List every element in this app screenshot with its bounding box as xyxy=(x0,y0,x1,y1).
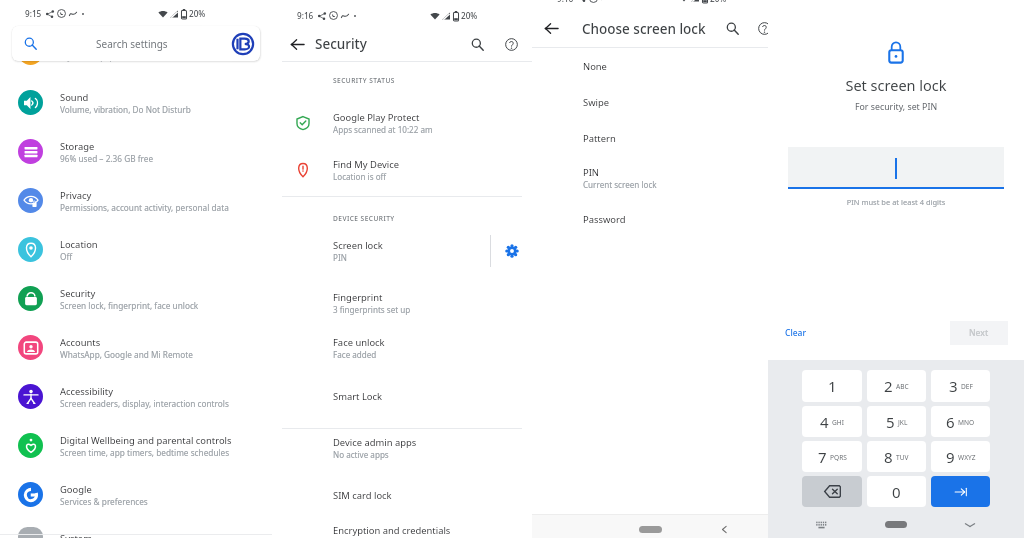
button[interactable]: Google xyxy=(0,470,272,519)
staticText: TUV xyxy=(896,453,909,462)
button[interactable]: None xyxy=(532,49,768,84)
staticText: 5 xyxy=(886,412,895,432)
staticText: Set screen lock xyxy=(768,75,1024,95)
staticText: Swipe xyxy=(583,96,610,109)
button[interactable]: Next xyxy=(950,321,1008,345)
staticText: 96% used – 2.36 GB free xyxy=(60,153,154,164)
staticText: Find My Device xyxy=(333,158,400,171)
staticText: Google Play Protect xyxy=(333,111,420,124)
button[interactable]: SIM card lock xyxy=(272,466,532,524)
staticText: Storage xyxy=(60,140,95,153)
staticText: 9:16 xyxy=(297,10,314,21)
button[interactable]: Pattern xyxy=(532,121,768,155)
button[interactable]: 4 xyxy=(802,406,862,437)
button[interactable]: 1 xyxy=(802,370,862,402)
staticText: PQRS xyxy=(830,453,847,462)
staticText: 20% xyxy=(461,10,478,21)
button[interactable]: Accessibility xyxy=(0,372,272,421)
button[interactable]: Backspace xyxy=(802,476,862,507)
staticText: PIN xyxy=(583,166,600,179)
staticText: Privacy xyxy=(60,189,92,202)
button[interactable]: Screen lock settings xyxy=(491,229,532,273)
staticText: 3 fingerprints set up xyxy=(333,304,411,315)
staticText: For security, set PIN xyxy=(768,101,1024,113)
button[interactable]: Device admin apps xyxy=(272,429,532,466)
button[interactable]: Search xyxy=(460,27,494,61)
button[interactable]: Face unlock xyxy=(272,332,532,364)
button[interactable]: Search settings xyxy=(12,26,260,61)
staticText: Accessibility xyxy=(60,385,113,398)
button[interactable]: Find My Device xyxy=(272,149,532,190)
staticText: Digital Wellbeing and parental controls xyxy=(60,434,232,447)
staticText: DEVICE SECURITY xyxy=(333,214,395,223)
button[interactable]: Encryption and credentials xyxy=(272,524,532,538)
button[interactable]: Storage xyxy=(0,127,272,176)
staticText: Screen time, app timers, bedtime schedul… xyxy=(60,447,230,458)
button[interactable]: 8 xyxy=(867,441,926,472)
button[interactable]: PIN xyxy=(532,155,768,201)
staticText: Smart Lock xyxy=(333,390,383,403)
staticText: Current screen lock xyxy=(583,179,657,190)
staticText: Screen lock, fingerprint, face unlock xyxy=(60,300,199,311)
button[interactable]: 2 xyxy=(867,370,926,402)
staticText: JKL xyxy=(898,418,908,427)
staticText: 1 xyxy=(828,376,837,396)
staticText: ABC xyxy=(896,382,909,391)
button[interactable]: Enter xyxy=(931,476,990,507)
button[interactable]: Back xyxy=(532,10,570,47)
staticText: Search settings xyxy=(96,37,168,51)
staticText: PIN xyxy=(333,252,347,263)
staticText: Device admin apps xyxy=(333,436,417,449)
staticText: System xyxy=(60,532,92,538)
staticText: PIN must be at least 4 digits xyxy=(768,197,1024,207)
button[interactable]: Accounts xyxy=(0,323,272,372)
staticText: 20% xyxy=(710,0,727,3)
staticText: SECURITY STATUS xyxy=(333,76,395,85)
staticText: Security xyxy=(315,35,367,53)
button[interactable]: Security xyxy=(0,274,272,323)
button[interactable]: Sound xyxy=(0,78,272,127)
button[interactable]: Swipe xyxy=(532,84,768,121)
button[interactable]: 6 xyxy=(931,406,990,437)
button[interactable]: 9 xyxy=(931,441,990,472)
staticText: Apps scanned at 10:22 am xyxy=(333,124,433,135)
staticText: 3 xyxy=(949,376,958,396)
staticText: Location xyxy=(60,238,98,251)
staticText: No active apps xyxy=(333,449,389,460)
button[interactable]: Location xyxy=(0,225,272,274)
button[interactable]: Screen lock xyxy=(272,229,490,273)
button[interactable]: Privacy xyxy=(0,176,272,225)
button[interactable]: 7 xyxy=(802,441,862,472)
button[interactable]: 5 xyxy=(867,406,926,437)
staticText: 6 xyxy=(946,412,955,432)
button[interactable]: Smart Lock xyxy=(272,364,532,428)
staticText: WXYZ xyxy=(958,453,976,462)
staticText: 9 xyxy=(946,447,955,467)
staticText: Security xyxy=(60,287,96,300)
button[interactable]: Back xyxy=(272,27,322,61)
staticText: Fingerprint xyxy=(333,291,383,304)
button[interactable]: Help xyxy=(748,12,781,45)
button[interactable]: Digital Wellbeing and parental controls xyxy=(0,421,272,470)
staticText: Permissions, account activity, personal … xyxy=(60,202,229,213)
button[interactable]: Fingerprint xyxy=(272,273,532,332)
staticText: Clear xyxy=(785,327,807,339)
button[interactable]: Clear xyxy=(780,322,812,344)
staticText: Face added xyxy=(333,349,377,360)
staticText: Screen lock xyxy=(333,239,383,252)
staticText: MNO xyxy=(958,418,975,427)
staticText: GHI xyxy=(832,418,844,427)
button[interactable]: 3 xyxy=(931,370,990,402)
button[interactable]: Google Play Protect xyxy=(272,97,532,149)
staticText: 9:15 xyxy=(25,8,42,19)
staticText: Screen readers, display, interaction con… xyxy=(60,398,229,409)
staticText: Google xyxy=(60,483,92,496)
button[interactable]: Password xyxy=(532,201,768,237)
staticText: Sound xyxy=(60,91,89,104)
button[interactable]: Search xyxy=(716,12,749,45)
staticText: 4 xyxy=(820,412,829,432)
button[interactable]: Help xyxy=(494,27,528,61)
staticText: Choose screen lock xyxy=(582,20,706,38)
button[interactable]: 0 xyxy=(867,476,926,507)
